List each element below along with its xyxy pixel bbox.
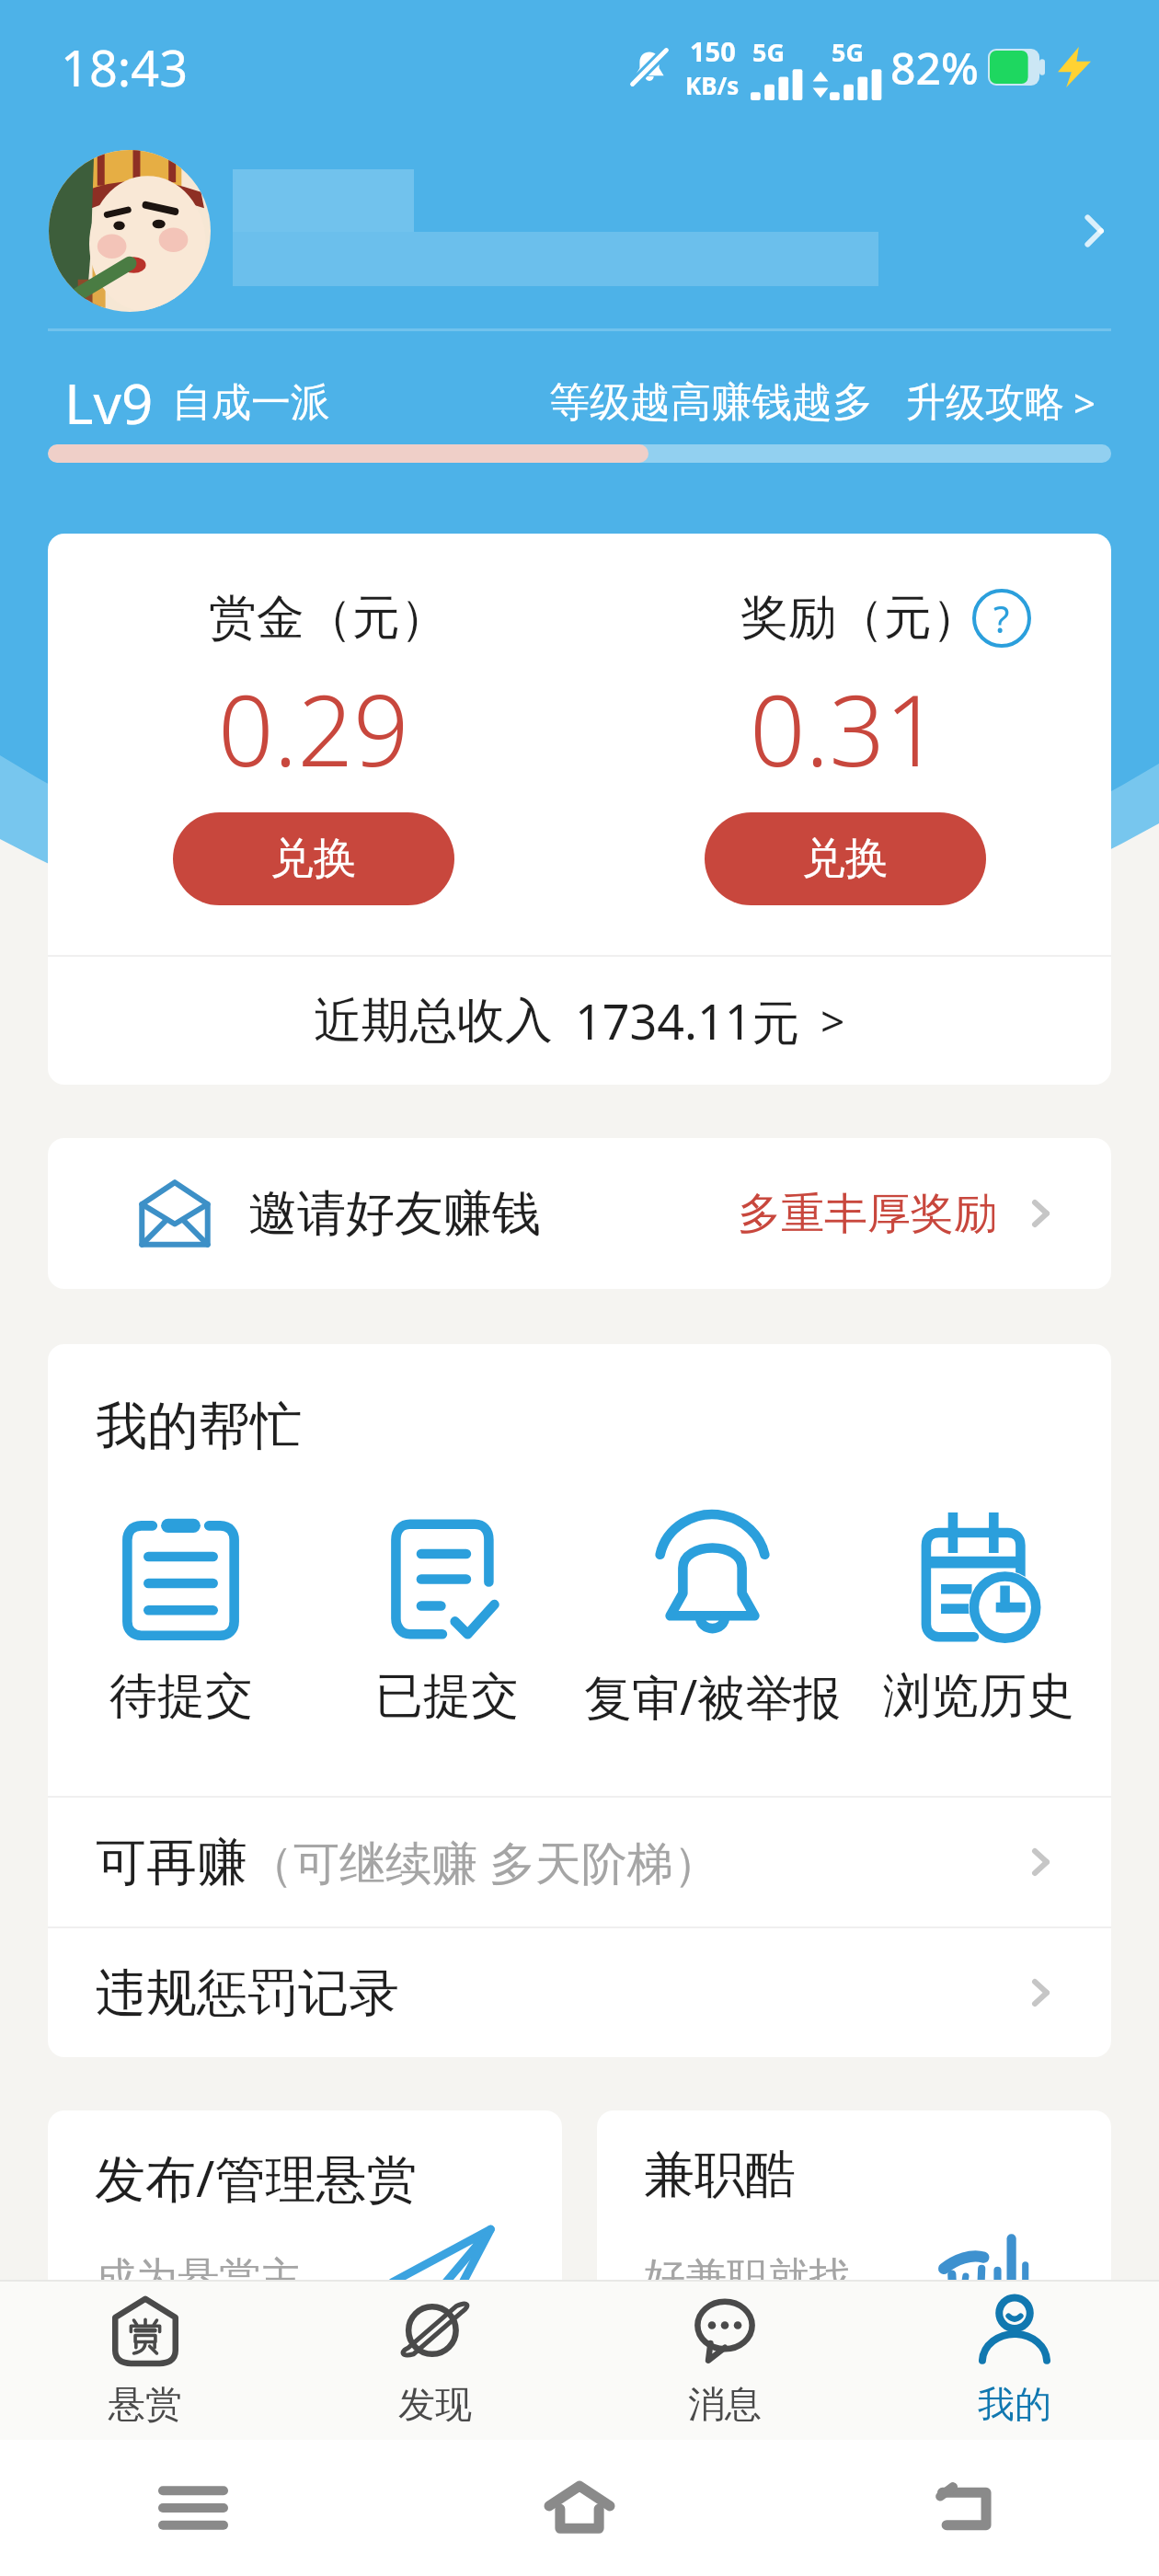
staticText: 升级攻略	[906, 378, 1064, 428]
staticText: 5G	[832, 35, 864, 69]
other: Back	[939, 2484, 993, 2532]
staticText: 悬赏	[109, 2381, 182, 2427]
button[interactable]: 消息	[579, 2282, 869, 2440]
staticText: 发现	[398, 2381, 472, 2427]
button[interactable]: 复审/被举报	[579, 1459, 845, 1796]
staticText: 5G	[752, 35, 785, 69]
button[interactable]: 违规惩罚记录	[48, 1928, 1111, 2057]
button[interactable]: Help	[972, 589, 1031, 648]
staticText: 兑换	[270, 832, 357, 886]
staticText: 多重丰厚奖励	[738, 1187, 997, 1241]
staticText: 浏览历史	[883, 1666, 1074, 1727]
staticText: ?	[993, 593, 1010, 643]
staticText: 待提交	[109, 1666, 253, 1727]
staticText: 近期总收入	[314, 991, 553, 1052]
button[interactable]: 已提交	[314, 1459, 579, 1796]
staticText: 兑换	[802, 832, 889, 886]
button[interactable]: 浏览历史	[845, 1459, 1111, 1796]
button[interactable]: 发布/管理悬赏	[48, 2110, 562, 2368]
staticText: 我的	[978, 2381, 1051, 2427]
staticText: 18:43	[61, 33, 189, 101]
staticText: 邀请好友赚钱	[248, 1183, 541, 1245]
other: Home	[549, 2484, 610, 2532]
staticText: 好兼职就找	[644, 2252, 851, 2305]
staticText: 成为悬赏主	[95, 2252, 302, 2305]
button[interactable]: 兼职酷	[597, 2110, 1111, 2368]
staticText: 0.31	[750, 662, 941, 795]
staticText: KB/s	[685, 69, 740, 101]
staticText: （可继续赚 多天阶梯）	[247, 1831, 719, 1893]
staticText: 我的帮忙	[96, 1394, 302, 1459]
button[interactable]: 升级攻略	[906, 376, 1111, 429]
button[interactable]: 兑换	[173, 812, 454, 905]
staticText: >	[1073, 376, 1096, 429]
staticText: 已提交	[375, 1666, 519, 1727]
staticText: 奖励（元）	[740, 588, 980, 649]
other: Profile detail	[1067, 205, 1119, 257]
button[interactable]: 邀请好友赚钱	[48, 1138, 1111, 1289]
staticText: 赏金（元）	[209, 588, 448, 649]
staticText: Lv9	[64, 365, 154, 441]
staticText: >	[820, 992, 845, 1050]
staticText: 可再赚	[96, 1831, 247, 1894]
button[interactable]: 待提交	[48, 1459, 314, 1796]
staticText: 82%	[890, 38, 979, 98]
button[interactable]: 发现	[290, 2282, 579, 2440]
button[interactable]: 近期总收入	[48, 957, 1111, 1085]
staticText: 发布/管理悬赏	[95, 2143, 418, 2212]
staticText: 150	[690, 33, 736, 69]
button[interactable]: 我的	[869, 2282, 1159, 2440]
button[interactable]: 兑换	[705, 812, 986, 905]
other: Recents	[163, 2484, 224, 2532]
staticText: 兼职酷	[644, 2143, 796, 2206]
button[interactable]: Profile detail	[0, 133, 1159, 328]
staticText: 违规惩罚记录	[96, 1961, 399, 2025]
button[interactable]: 可再赚	[48, 1798, 1111, 1926]
staticText: 等级越高赚钱越多	[549, 377, 873, 428]
staticText: 消息	[688, 2381, 762, 2427]
staticText: 自成一派	[172, 378, 330, 428]
button[interactable]: 悬赏	[0, 2282, 290, 2440]
staticText: 0.29	[218, 662, 409, 795]
staticText: 复审/被举报	[584, 1663, 842, 1729]
staticText: 1734.11元	[575, 988, 800, 1053]
